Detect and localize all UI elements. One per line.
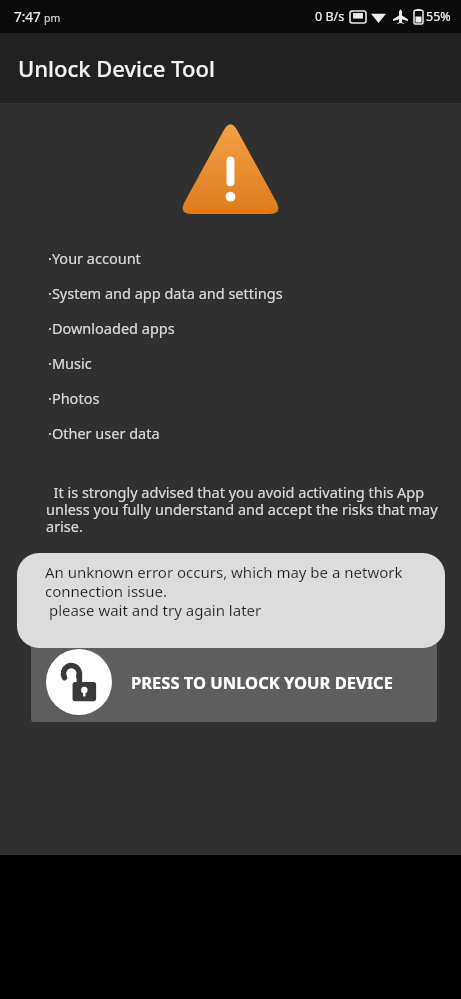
button[interactable]: Agree: [50, 604, 135, 629]
staticText: PRESS TO UNLOCK YOUR DEVICE: [131, 671, 393, 693]
staticText: 0 B/s: [315, 8, 345, 25]
staticText: Unlock Device Tool: [18, 53, 215, 83]
staticText: Agree: [87, 606, 135, 628]
staticText: ·Downloaded apps: [48, 318, 175, 338]
staticText: ·System and app data and settings: [48, 283, 283, 303]
staticText: ·Other user data: [48, 423, 160, 443]
staticText: ·Your account: [48, 248, 141, 268]
staticText: 7:47: [14, 8, 41, 26]
button[interactable]: Unlock Device Tool: [0, 33, 461, 103]
staticText: It is strongly advised that you avoid ac…: [46, 482, 439, 536]
staticText: An unknown error occurs, which may be a …: [45, 562, 427, 620]
staticText: pm: [44, 11, 61, 25]
staticText: 55%: [426, 8, 451, 25]
staticText: ·Music: [48, 353, 92, 373]
staticText: ·Photos: [48, 388, 100, 408]
button[interactable]: PRESS TO UNLOCK YOUR DEVICE: [31, 642, 437, 722]
staticText: Unlock Device Tool needs to use the IMEI…: [46, 555, 439, 592]
